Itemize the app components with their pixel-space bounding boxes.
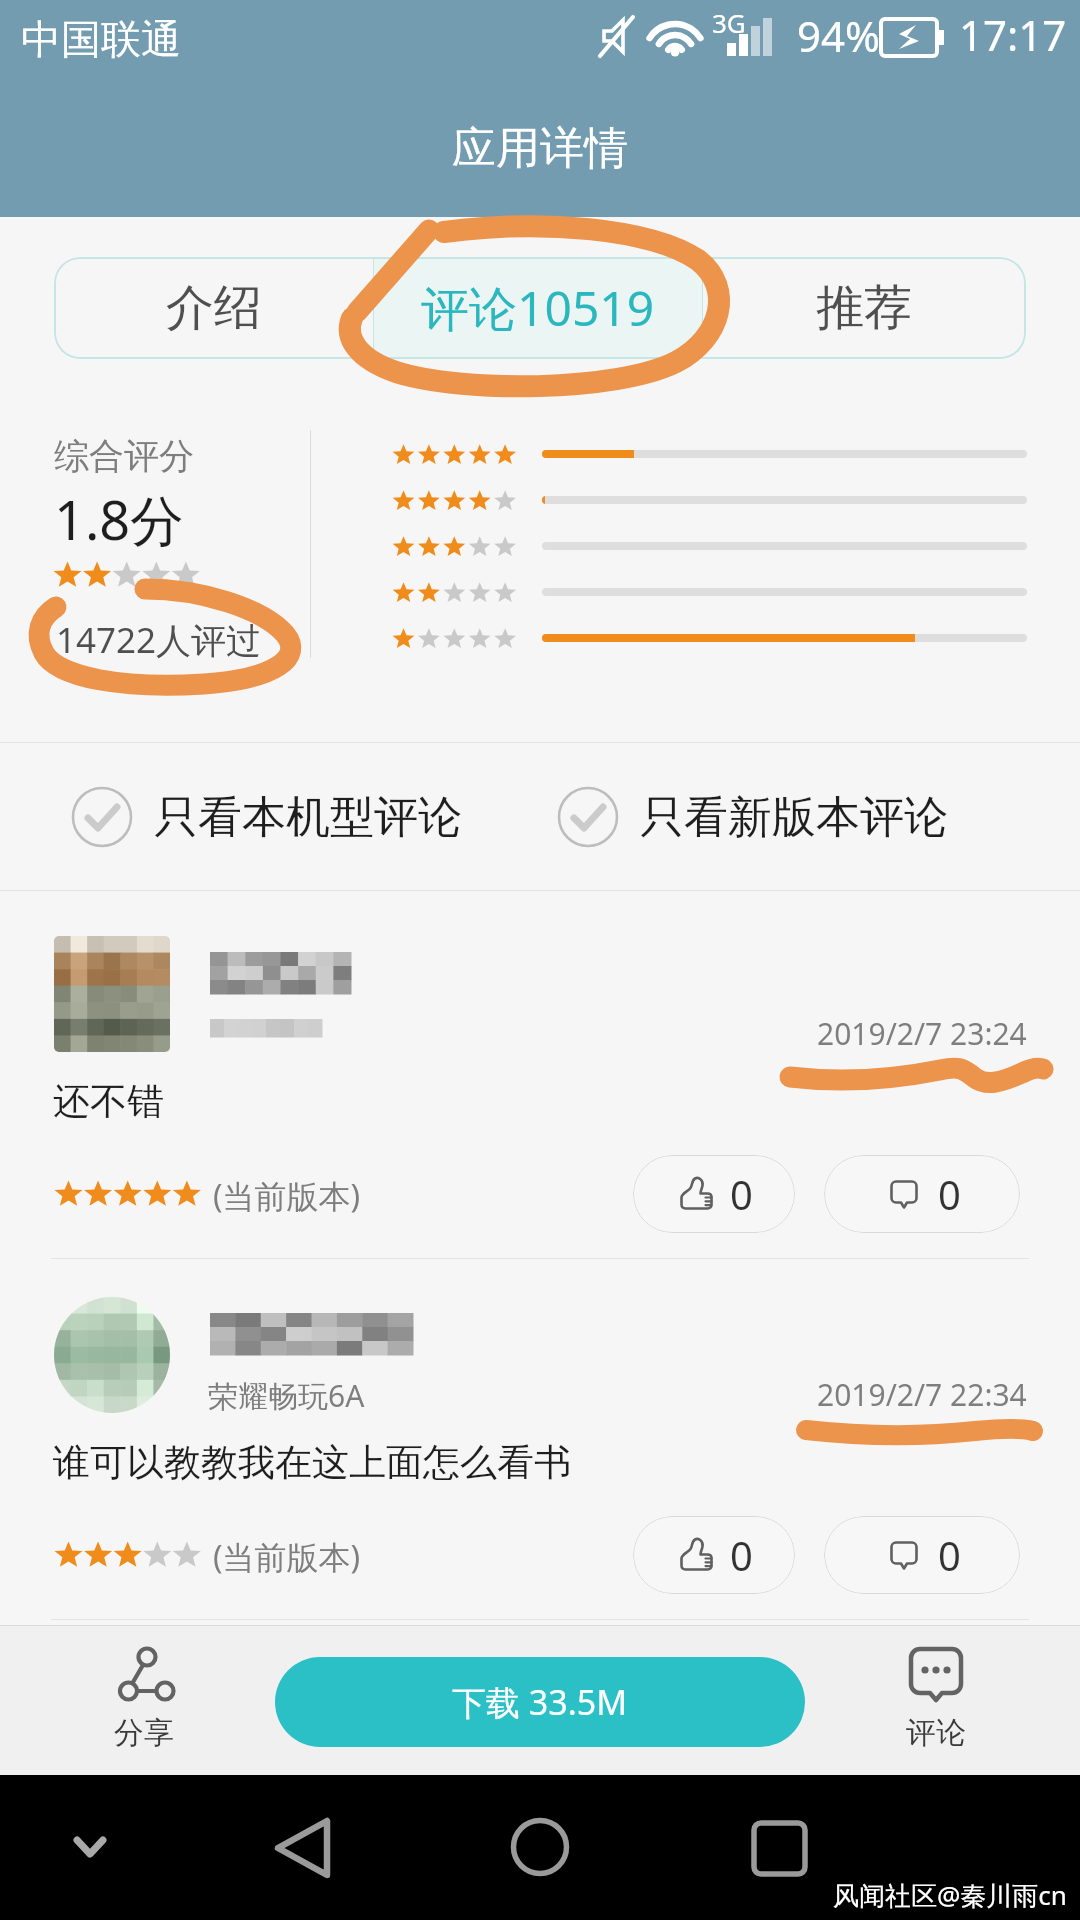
button[interactable]: Like: [633, 1155, 795, 1233]
button[interactable]: Comment: [824, 1155, 1020, 1233]
button[interactable]: 介绍: [54, 257, 373, 359]
button[interactable]: Share: [84, 1644, 204, 1752]
staticText: 荣耀畅玩6A: [208, 1375, 365, 1416]
other: Back: [270, 1815, 330, 1881]
staticText: 17:17: [959, 6, 1067, 63]
staticText: 应用详情: [452, 121, 628, 176]
other: Home: [506, 1813, 574, 1881]
staticText: 风闻社区@秦川雨cn: [833, 1877, 1067, 1913]
staticText: 1.8分: [54, 482, 185, 556]
staticText: 0: [730, 1167, 753, 1221]
staticText: 只看本机型评论: [154, 790, 462, 845]
staticText: (当前版本): [213, 1174, 361, 1218]
staticText: 3G: [712, 5, 746, 40]
staticText: (当前版本): [213, 1535, 361, 1579]
staticText: 分享: [114, 1714, 174, 1752]
staticText: 评论10519: [421, 275, 655, 341]
button[interactable]: 评论10519: [374, 257, 702, 359]
staticText: 2019/2/7 23:24: [817, 1013, 1027, 1054]
button[interactable]: 只看新版本评论: [558, 787, 948, 847]
other: Hide keyboard: [70, 1833, 110, 1863]
button[interactable]: 只看本机型评论: [72, 787, 462, 847]
staticText: 0: [730, 1528, 753, 1582]
button[interactable]: Like: [633, 1516, 795, 1594]
staticText: 介绍: [166, 278, 262, 338]
button[interactable]: Comments: [876, 1644, 996, 1752]
staticText: 评论: [906, 1714, 966, 1752]
staticText: 推荐: [816, 278, 912, 338]
other: Recent apps: [748, 1817, 812, 1881]
staticText: 综合评分: [54, 434, 194, 478]
staticText: 0: [938, 1167, 961, 1221]
staticText: 0: [938, 1528, 961, 1582]
staticText: 谁可以教教我在这上面怎么看书: [53, 1439, 571, 1486]
staticText: 14722人评过: [56, 616, 262, 664]
staticText: 下载 33.5M: [452, 1679, 628, 1725]
button[interactable]: Comment: [824, 1516, 1020, 1594]
staticText: 还不错: [53, 1078, 164, 1125]
staticText: 只看新版本评论: [640, 790, 948, 845]
button[interactable]: 下载 33.5M: [275, 1657, 805, 1747]
staticText: 2019/2/7 22:34: [817, 1374, 1027, 1415]
staticText: 中国联通: [21, 14, 181, 64]
staticText: 94%: [797, 7, 880, 64]
button[interactable]: 推荐: [703, 257, 1025, 359]
